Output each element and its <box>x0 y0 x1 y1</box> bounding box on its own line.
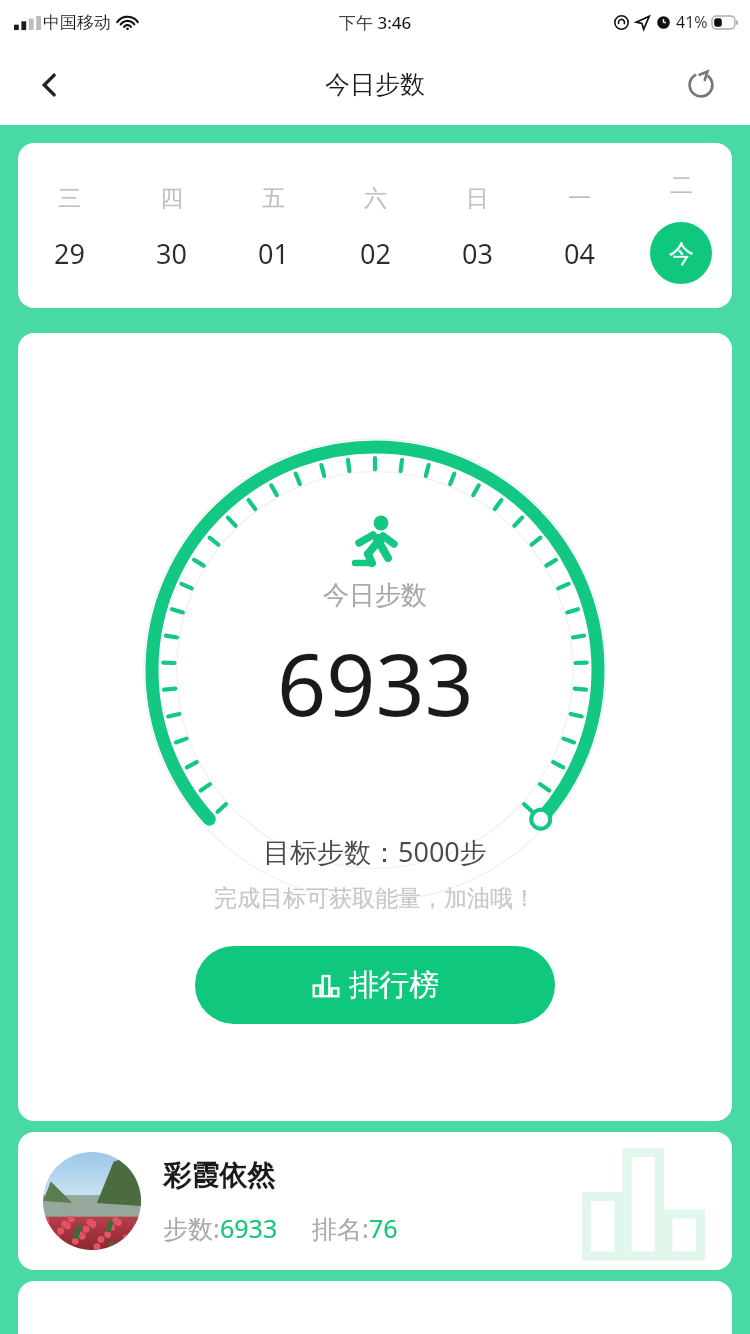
staticText: 76 <box>369 1211 398 1245</box>
staticText: 6933 <box>220 1211 278 1245</box>
staticText: 01 <box>258 235 289 272</box>
staticText: 一 <box>568 184 591 213</box>
button[interactable]: 刷新 <box>674 58 728 112</box>
staticText: 今日步数 <box>325 69 425 100</box>
staticText: 41% <box>676 11 708 33</box>
staticText: 中国移动 <box>43 12 111 33</box>
staticText: 03 <box>462 235 493 272</box>
button[interactable]: 排行榜 <box>195 946 555 1024</box>
staticText: 30 <box>156 235 187 272</box>
staticText: 6933 <box>277 624 474 741</box>
staticText: 完成目标可获取能量，加油哦！ <box>214 884 536 913</box>
button[interactable]: 四 <box>120 143 222 308</box>
staticText: 步数: <box>163 1211 220 1245</box>
staticText: 今 <box>669 238 694 269</box>
staticText: 四 <box>160 184 183 213</box>
button[interactable]: 六 <box>324 143 426 308</box>
button[interactable]: 彩霞依然 <box>18 1132 732 1270</box>
staticText: 排名: <box>312 1211 369 1245</box>
staticText: 04 <box>564 235 595 272</box>
staticText: 02 <box>360 235 391 272</box>
button[interactable]: 日 <box>426 143 528 308</box>
button[interactable]: 一 <box>528 143 630 308</box>
staticText: 目标步数：5000步 <box>263 833 487 870</box>
staticText: 下午 3:46 <box>339 11 412 34</box>
staticText: 三 <box>58 184 81 213</box>
staticText: 二 <box>670 171 693 200</box>
staticText: 六 <box>364 184 387 213</box>
staticText: 29 <box>54 235 85 272</box>
button[interactable]: 五 <box>222 143 324 308</box>
button[interactable]: 二 <box>630 143 732 308</box>
button[interactable]: 返回 <box>22 57 78 113</box>
staticText: 日 <box>466 184 489 213</box>
staticText: 今日步数 <box>323 579 427 612</box>
staticText: 彩霞依然 <box>163 1158 275 1193</box>
button[interactable]: 三 <box>18 143 120 308</box>
staticText: 五 <box>262 184 285 213</box>
staticText: 排行榜 <box>349 966 439 1004</box>
